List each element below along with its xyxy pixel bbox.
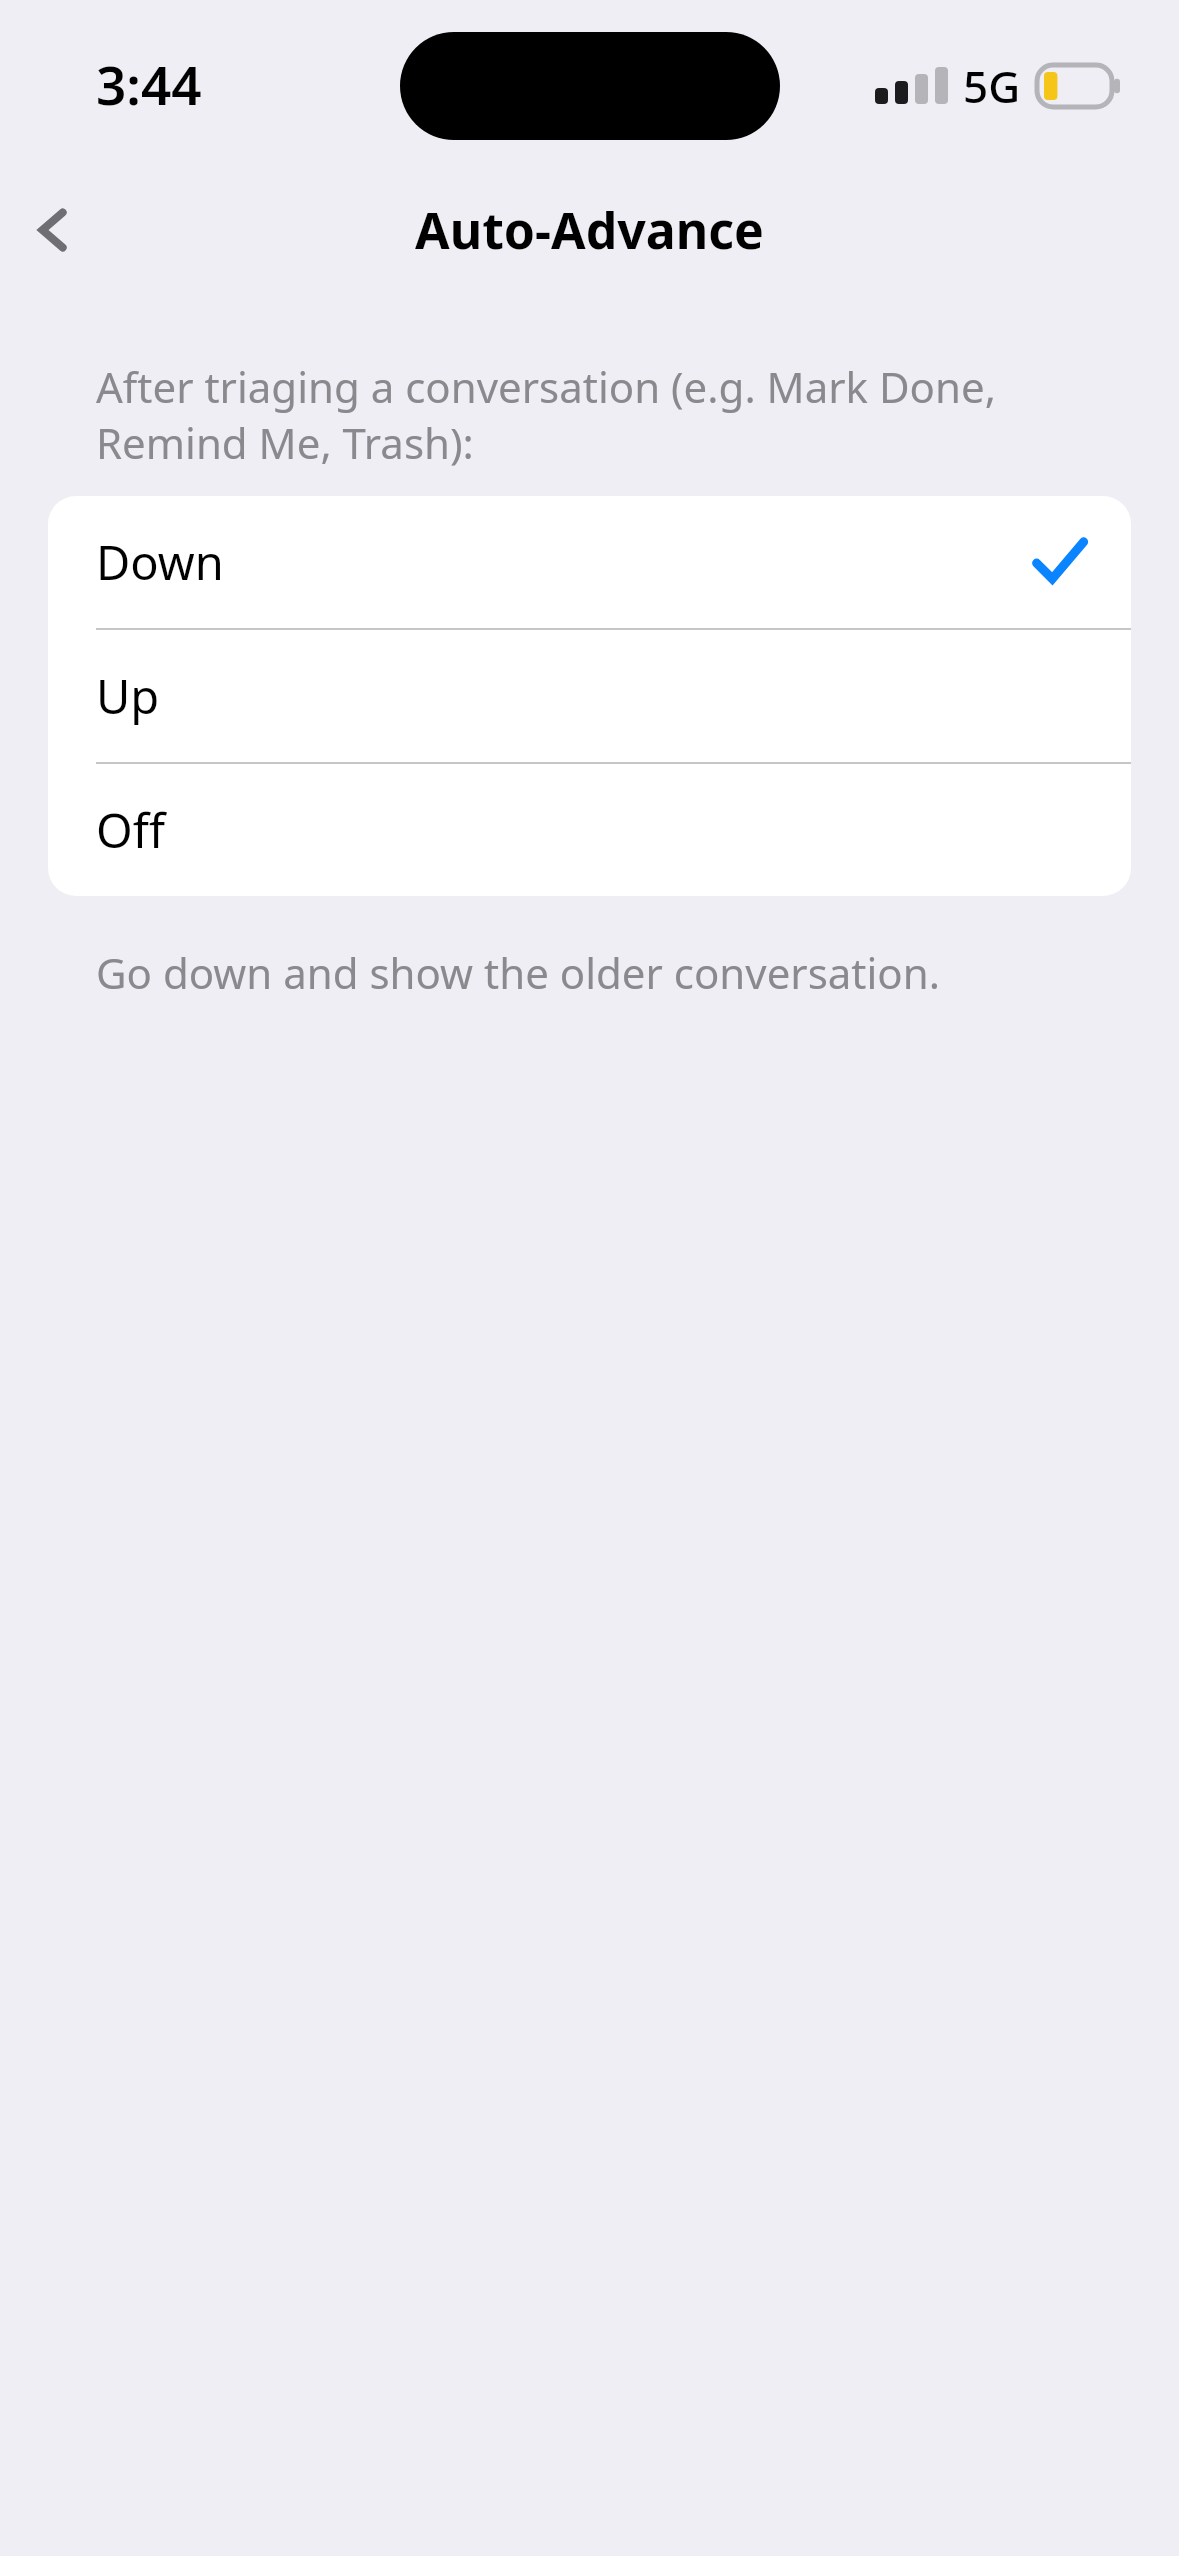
button[interactable]: Up [48,630,1131,762]
button[interactable]: Back [10,187,96,273]
staticText: 5G [963,56,1021,116]
staticText: Auto-Advance [415,196,764,264]
staticText: 3:44 [96,48,202,120]
staticText: Go down and show the older conversation. [96,944,1099,1001]
button[interactable]: Down [48,496,1131,628]
staticText: Up [96,664,160,728]
staticText: Off [96,798,166,862]
button[interactable]: Off [48,764,1131,896]
staticText: Down [96,530,224,594]
staticText: After triaging a conversation (e.g. Mark… [96,358,1099,471]
